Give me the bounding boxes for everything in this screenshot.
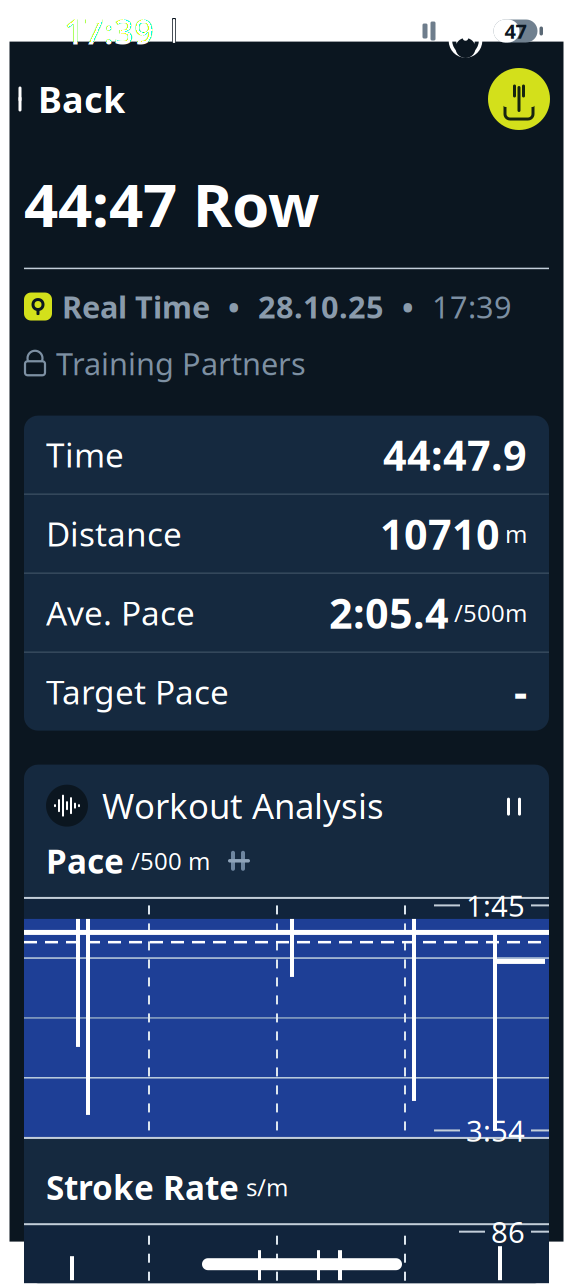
staticText: 3:54 bbox=[466, 1111, 525, 1150]
staticText: s/m bbox=[246, 1171, 288, 1203]
staticText: Target Pace bbox=[46, 669, 229, 714]
button[interactable]: Share bbox=[488, 68, 550, 130]
staticText: • bbox=[402, 286, 414, 327]
staticText: 10710 bbox=[380, 506, 500, 561]
staticText: Time bbox=[46, 432, 124, 477]
staticText: - bbox=[514, 664, 527, 719]
staticText: 1:45 bbox=[466, 886, 525, 925]
staticText: 86 bbox=[491, 1212, 525, 1251]
button[interactable]: Workout Analysis bbox=[24, 765, 549, 839]
staticText: Training Partners bbox=[56, 343, 306, 384]
staticText: m bbox=[505, 518, 527, 550]
staticText: 47 bbox=[504, 18, 526, 44]
staticText: /500 m bbox=[131, 845, 210, 877]
staticText: Back bbox=[38, 75, 125, 123]
staticText: 28.10.25 bbox=[258, 286, 384, 327]
staticText: Real Time bbox=[62, 286, 210, 327]
staticText: • bbox=[228, 286, 240, 327]
staticText: Stroke Rate bbox=[46, 1165, 239, 1209]
staticText: 44:47.9 bbox=[383, 427, 527, 482]
staticText: Ave. Pace bbox=[46, 590, 195, 635]
staticText: 44:47 Row bbox=[24, 164, 319, 244]
staticText: Pace bbox=[46, 839, 124, 883]
staticText: 17:39 bbox=[64, 8, 154, 54]
staticText: Workout Analysis bbox=[102, 783, 384, 829]
staticText: Distance bbox=[46, 511, 182, 556]
button[interactable]: Back bbox=[0, 65, 141, 133]
staticText: 2:05.4 bbox=[329, 585, 449, 640]
staticText: /500m bbox=[454, 597, 527, 629]
staticText: 17:39 bbox=[432, 286, 512, 327]
